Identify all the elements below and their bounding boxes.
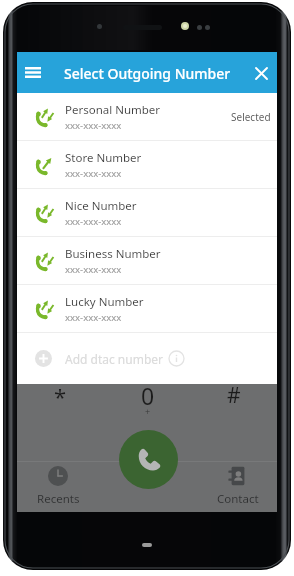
button[interactable]: Add dtac number — [17, 333, 277, 384]
button[interactable]: Contact — [202, 460, 274, 504]
staticText: 0 — [141, 380, 155, 411]
staticText: + — [145, 405, 151, 417]
button[interactable]: Close — [243, 55, 279, 91]
staticText: Recents — [37, 491, 80, 504]
button[interactable]: Personal Number — [17, 93, 277, 141]
staticText: xxx-xxx-xxxx — [65, 119, 122, 132]
staticText: Nice Number — [65, 198, 137, 214]
staticText: Personal Number — [65, 102, 161, 118]
staticText: Store Number — [65, 150, 142, 166]
staticText: Select Outgoing Number — [64, 64, 231, 83]
staticText: xxx-xxx-xxxx — [65, 263, 122, 276]
staticText: Add dtac number — [65, 351, 164, 367]
button[interactable]: Lucky Number — [17, 285, 277, 333]
button[interactable]: Menu — [13, 52, 52, 93]
staticText: Business Number — [65, 246, 161, 262]
staticText: xxx-xxx-xxxx — [65, 311, 122, 324]
button[interactable]: Call — [119, 430, 178, 489]
staticText: * — [54, 381, 67, 411]
staticText: xxx-xxx-xxxx — [65, 167, 122, 180]
staticText: xxx-xxx-xxxx — [65, 215, 122, 228]
button[interactable]: Store Number — [17, 141, 277, 189]
staticText: Selected — [231, 110, 271, 124]
button[interactable]: Recents — [22, 460, 94, 504]
staticText: # — [227, 381, 241, 410]
button[interactable]: Nice Number — [17, 189, 277, 237]
staticText: Lucky Number — [65, 294, 144, 310]
staticText: Contact — [217, 491, 259, 504]
button[interactable]: Business Number — [17, 237, 277, 285]
